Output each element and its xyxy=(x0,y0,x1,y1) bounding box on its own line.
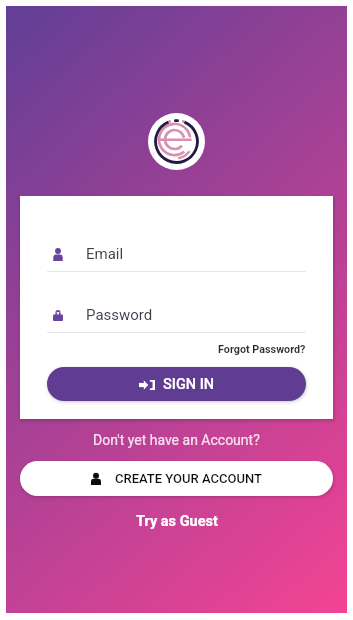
button[interactable]: Password xyxy=(47,306,306,333)
staticText: Password xyxy=(86,306,153,324)
staticText: CREATE YOUR ACCOUNT xyxy=(115,471,262,486)
button[interactable]: Try as Guest xyxy=(136,513,218,530)
staticText: SIGN IN xyxy=(163,376,215,393)
staticText: Don't yet have an Account? xyxy=(93,432,260,448)
button[interactable]: Forgot Password? xyxy=(218,343,306,356)
staticText: Email xyxy=(86,245,124,263)
button[interactable]: Email xyxy=(47,245,306,272)
button[interactable]: CREATE YOUR ACCOUNT xyxy=(20,461,333,496)
button[interactable]: SIGN IN xyxy=(47,367,306,401)
